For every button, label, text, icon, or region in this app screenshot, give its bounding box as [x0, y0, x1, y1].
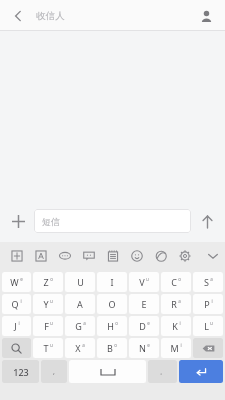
button[interactable]: Voice phrases [53, 244, 77, 268]
button[interactable]: X [65, 338, 95, 358]
staticText: o [114, 342, 117, 348]
button[interactable]: T [33, 338, 63, 358]
button[interactable]: M [161, 338, 191, 358]
staticText: X [75, 342, 81, 354]
button[interactable]: Settings [173, 244, 197, 268]
staticText: R [171, 298, 177, 310]
button[interactable]: Space [69, 360, 146, 383]
staticText: B [107, 342, 113, 354]
staticText: C [171, 276, 177, 288]
button[interactable]: Backspace [193, 338, 223, 358]
staticText: a [178, 298, 181, 304]
button[interactable]: English input [29, 244, 53, 268]
button[interactable]: S [193, 272, 223, 292]
staticText: a [83, 320, 86, 326]
button[interactable]: F [33, 316, 63, 336]
staticText: H [107, 320, 114, 332]
button[interactable]: Enter [179, 360, 223, 383]
button[interactable]: Send [195, 209, 219, 233]
button[interactable]: H [97, 316, 127, 336]
staticText: T [43, 342, 49, 354]
staticText: Y [43, 298, 49, 310]
staticText: J [14, 320, 17, 332]
staticText: u [50, 342, 53, 348]
staticText: a [210, 276, 213, 282]
button[interactable]: A [65, 294, 95, 314]
staticText: u [50, 320, 53, 326]
button[interactable]: V [129, 272, 159, 292]
button[interactable]: K [161, 316, 191, 336]
button[interactable]: Z [33, 272, 63, 292]
staticText: M [170, 342, 179, 354]
staticText: O [108, 298, 116, 310]
button[interactable]: Contacts [193, 3, 219, 29]
staticText: K [172, 320, 178, 332]
staticText: e [147, 320, 150, 326]
button[interactable]: B [97, 338, 127, 358]
button[interactable]: C [161, 272, 191, 292]
staticText: W [10, 276, 19, 288]
staticText: , [53, 367, 55, 377]
staticText: F [44, 320, 49, 332]
button[interactable]: D [129, 316, 159, 336]
button[interactable]: I [97, 272, 127, 292]
staticText: u [50, 298, 53, 304]
staticText: V [139, 276, 145, 288]
button[interactable]: O [97, 294, 127, 314]
staticText: i [179, 320, 181, 326]
button[interactable]: Chinese input [5, 244, 29, 268]
staticText: E [141, 298, 147, 310]
button[interactable]: Attach [6, 209, 30, 233]
button[interactable]: L [193, 316, 223, 336]
button[interactable]: , [41, 360, 67, 383]
staticText: e [147, 342, 150, 348]
button[interactable]: Back [4, 2, 32, 30]
button[interactable]: J [2, 316, 31, 336]
staticText: o [178, 276, 181, 282]
button[interactable]: W [2, 272, 31, 292]
staticText: u [210, 320, 213, 326]
button[interactable]: U [65, 272, 95, 292]
button[interactable]: Q [2, 294, 31, 314]
staticText: o [50, 276, 53, 282]
button[interactable]: R [161, 294, 191, 314]
staticText: i [180, 342, 182, 348]
button[interactable]: 123 [2, 360, 39, 383]
staticText: i [20, 298, 22, 304]
staticText: o [115, 320, 118, 326]
button[interactable]: Emoji [125, 244, 149, 268]
staticText: N [139, 342, 146, 354]
button[interactable]: Handwriting [149, 244, 173, 268]
staticText: U [77, 276, 84, 288]
staticText: Q [11, 298, 19, 310]
staticText: A [77, 298, 83, 310]
staticText: u [146, 276, 149, 282]
button[interactable]: Hide keyboard [201, 244, 225, 268]
staticText: I [110, 276, 114, 288]
staticText: G [75, 320, 82, 332]
staticText: i [211, 298, 213, 304]
button[interactable]: Search [2, 338, 31, 358]
staticText: S [204, 276, 209, 288]
staticText: 短信 [42, 216, 60, 227]
button[interactable]: Y [33, 294, 63, 314]
staticText: 收信人 [36, 10, 65, 22]
button[interactable]: Clipboard [101, 244, 125, 268]
staticText: 。 [160, 368, 166, 376]
staticText: D [139, 320, 146, 332]
button[interactable]: N [129, 338, 159, 358]
staticText: L [204, 320, 209, 332]
button[interactable]: E [129, 294, 159, 314]
button[interactable]: G [65, 316, 95, 336]
staticText: a [82, 342, 85, 348]
staticText: P [204, 298, 210, 310]
staticText: i [18, 320, 20, 326]
staticText: e [20, 276, 23, 282]
staticText: Z [43, 276, 49, 288]
button[interactable]: 短信 [34, 209, 191, 233]
button[interactable]: P [193, 294, 223, 314]
button[interactable]: Messages [77, 244, 101, 268]
staticText: 123 [13, 366, 29, 378]
